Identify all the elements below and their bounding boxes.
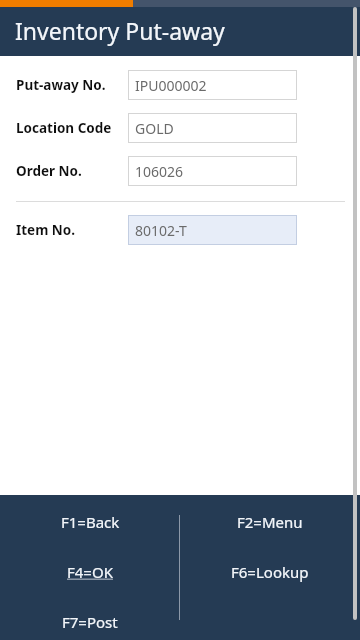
button[interactable]: Location Code (0, 113, 360, 143)
button[interactable]: Order No. (0, 156, 360, 186)
staticText: 106026 (135, 162, 184, 181)
button[interactable]: F4=OK (59, 559, 121, 585)
button[interactable]: F1=Back (53, 509, 128, 535)
button[interactable]: Put-away No. (0, 70, 360, 100)
staticText: Inventory Put-away (15, 15, 225, 46)
staticText: Location Code (16, 119, 112, 137)
staticText: Item No. (16, 221, 76, 239)
staticText: IPU000002 (135, 76, 207, 95)
button[interactable]: F2=Menu (229, 509, 311, 535)
staticText: GOLD (135, 119, 174, 138)
button[interactable]: Item No. (0, 215, 360, 245)
staticText: F2=Menu (237, 512, 303, 532)
staticText: Put-away No. (16, 76, 106, 94)
staticText: F6=Lookup (231, 562, 309, 582)
staticText: 80102-T (135, 221, 187, 240)
staticText: F4=OK (67, 562, 113, 582)
staticText: F7=Post (62, 612, 118, 632)
other: Scroll position (353, 7, 357, 620)
button[interactable]: F6=Lookup (223, 559, 317, 585)
staticText: F1=Back (61, 512, 120, 532)
staticText: Order No. (16, 162, 82, 180)
button[interactable]: F7=Post (54, 609, 126, 635)
